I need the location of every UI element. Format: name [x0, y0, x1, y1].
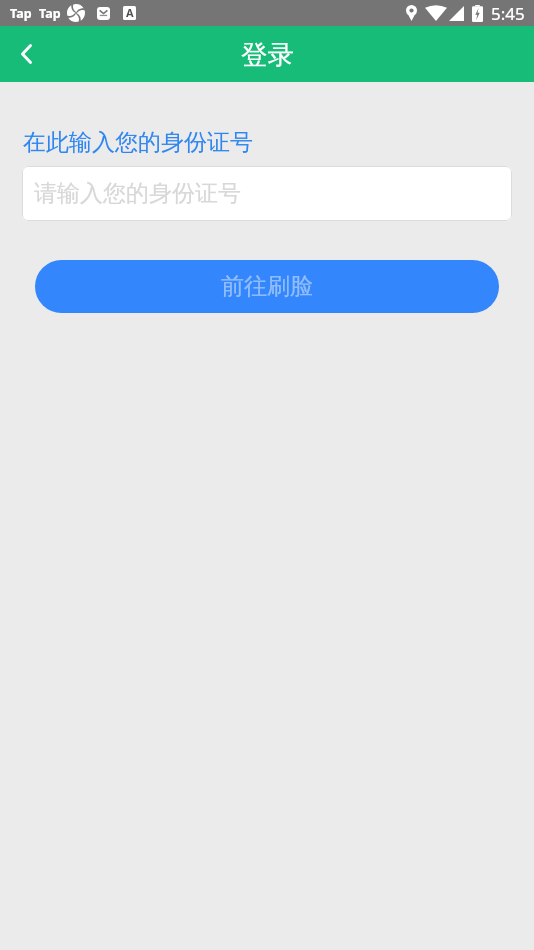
staticText: Tap [10, 5, 32, 22]
staticText: 登录 [241, 38, 294, 71]
button[interactable]: 前往刷脸 [35, 260, 499, 313]
button[interactable]: Back [0, 28, 52, 80]
staticText: 5:45 [491, 2, 525, 25]
staticText: 请输入您的身份证号 [34, 179, 241, 208]
staticText: 在此输入您的身份证号 [23, 128, 253, 157]
staticText: A [126, 5, 134, 19]
staticText: Tap [39, 5, 61, 22]
staticText: 前往刷脸 [221, 272, 313, 301]
button[interactable]: 请输入您的身份证号 [22, 166, 512, 221]
